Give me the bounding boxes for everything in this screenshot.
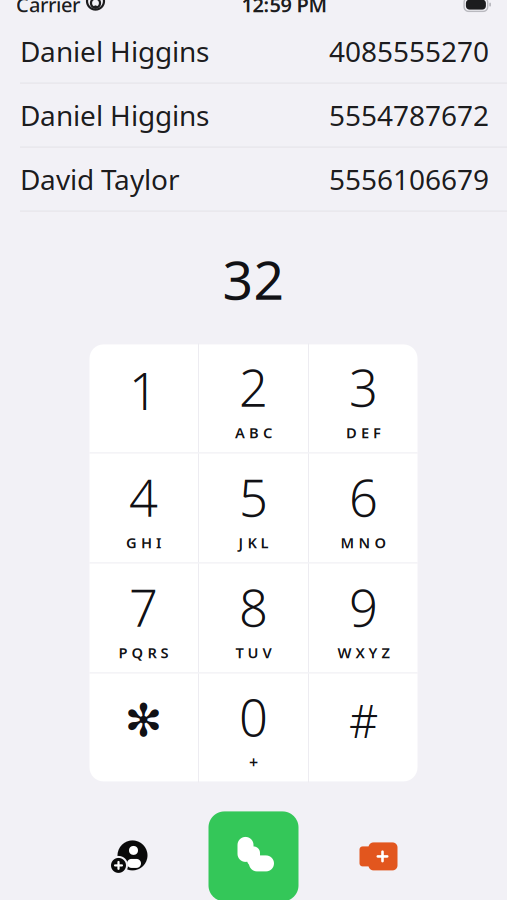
staticText: 9 <box>349 573 378 641</box>
staticText: 0 <box>239 683 268 750</box>
staticText: D E F <box>346 423 381 442</box>
button[interactable]: 3 <box>309 343 418 452</box>
button[interactable]: David Taylor <box>0 148 507 212</box>
button[interactable]: Call <box>208 811 298 900</box>
button[interactable]: 8 <box>199 563 308 672</box>
button[interactable]: ✻ <box>89 673 198 782</box>
button[interactable]: Add Contact <box>83 811 173 900</box>
staticText: M N O <box>340 533 386 552</box>
button[interactable]: 4 <box>89 453 198 562</box>
staticText: 2 <box>239 353 268 421</box>
staticText: T U V <box>235 643 271 662</box>
button[interactable]: Daniel Higgins <box>0 84 507 148</box>
button[interactable]: 9 <box>309 563 418 672</box>
staticText: ✻ <box>124 695 162 746</box>
staticText: G H I <box>126 533 161 552</box>
button[interactable]: 6 <box>309 453 418 562</box>
staticText: W X Y Z <box>337 643 389 662</box>
staticText: 1 <box>129 357 158 424</box>
staticText: J K L <box>238 533 268 552</box>
staticText: P Q R S <box>118 643 168 662</box>
staticText: David Taylor <box>20 160 180 198</box>
staticText: 32 <box>222 244 284 314</box>
staticText: + <box>249 751 258 773</box>
staticText: 3 <box>349 353 378 421</box>
staticText: Daniel Higgins <box>20 96 209 134</box>
button[interactable]: # <box>309 673 418 782</box>
staticText: 7 <box>129 573 158 641</box>
staticText: 5556106679 <box>329 160 489 198</box>
staticText: 8 <box>239 573 268 641</box>
staticText: 5 <box>239 463 268 531</box>
button[interactable]: Daniel Higgins <box>0 20 507 84</box>
button[interactable]: Delete <box>333 811 423 900</box>
staticText: 4085555270 <box>329 32 489 70</box>
staticText: 12:59 PM <box>242 0 328 18</box>
button[interactable]: 7 <box>89 563 198 672</box>
staticText: A B C <box>235 423 272 442</box>
staticText: 5554787672 <box>329 96 489 134</box>
staticText: 4 <box>129 463 158 531</box>
staticText: # <box>349 690 378 750</box>
staticText: 6 <box>349 463 378 531</box>
button[interactable]: 1 <box>89 343 198 452</box>
staticText: Carrier <box>16 0 80 18</box>
button[interactable]: 2 <box>199 343 308 452</box>
staticText: Daniel Higgins <box>20 32 209 70</box>
button[interactable]: 5 <box>199 453 308 562</box>
